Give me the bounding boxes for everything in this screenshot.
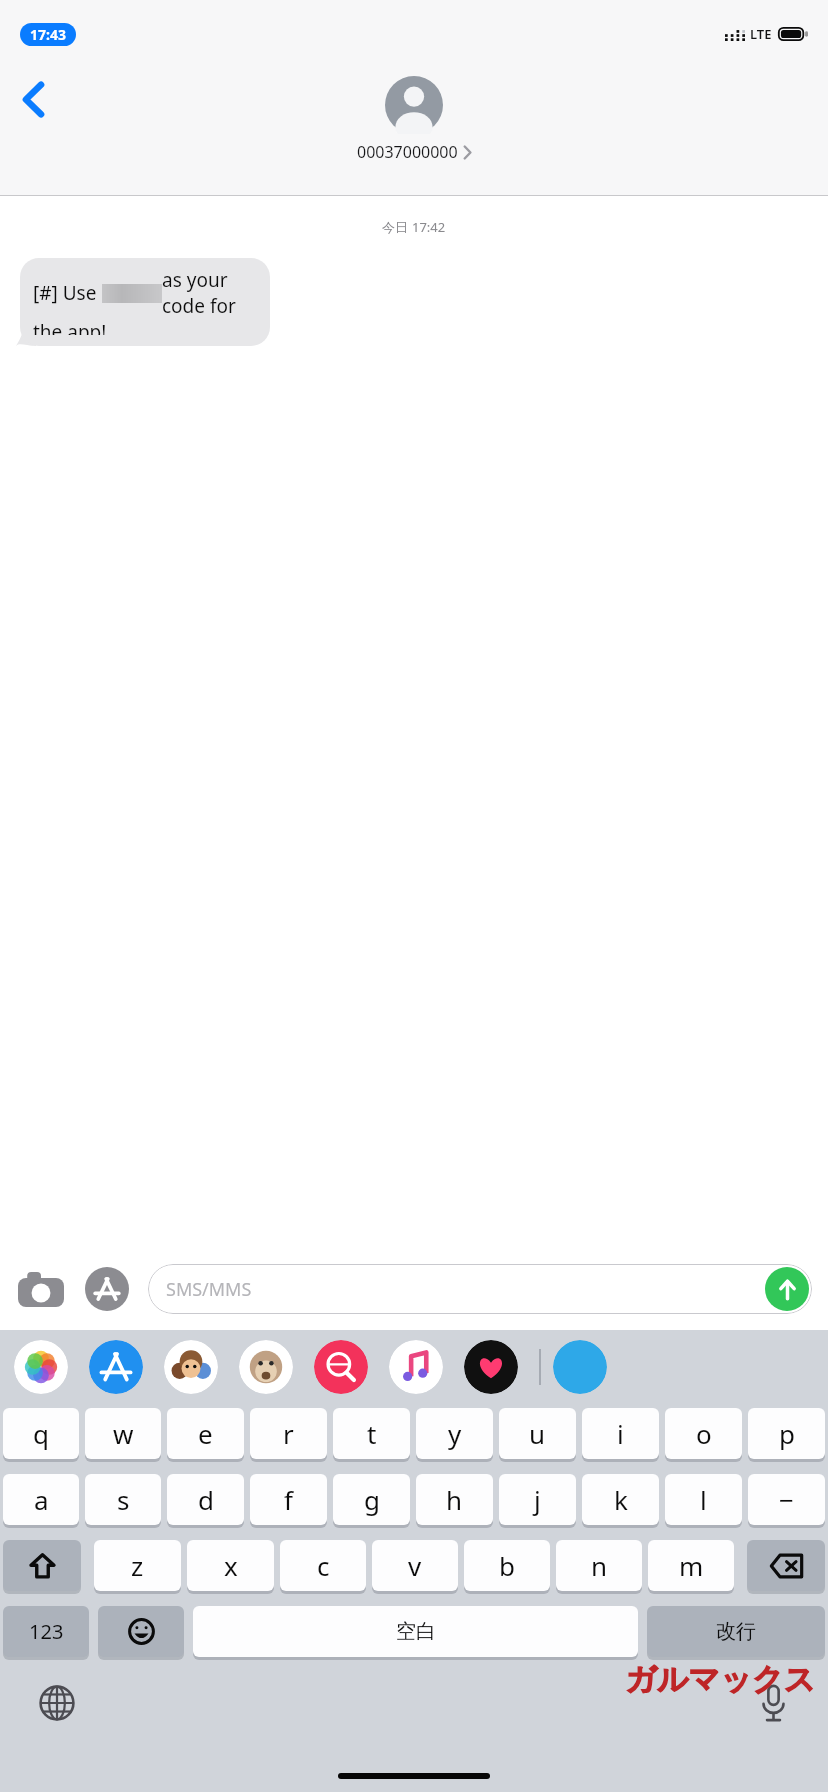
button[interactable]: x — [187, 1540, 274, 1591]
staticText: p — [779, 1416, 795, 1451]
button[interactable]: t — [333, 1408, 410, 1459]
staticText: o — [696, 1416, 712, 1451]
staticText: 17:42 — [412, 218, 446, 236]
button[interactable]: 空白 — [193, 1606, 638, 1657]
staticText: b — [499, 1548, 515, 1583]
staticText: u — [529, 1416, 546, 1451]
staticText: 00037000000 — [357, 141, 458, 163]
button[interactable]: s — [85, 1474, 161, 1525]
staticText: c — [317, 1548, 330, 1583]
button[interactable]: Camera — [16, 1264, 66, 1314]
button[interactable]: g — [333, 1474, 410, 1525]
staticText: 17:43 — [30, 25, 66, 44]
staticText: SMS/MMS — [166, 1277, 252, 1302]
button[interactable]: j — [499, 1474, 576, 1525]
button[interactable]: Back — [4, 70, 62, 128]
button[interactable]: k — [582, 1474, 659, 1525]
button[interactable]: App shortcut 0 — [14, 1340, 68, 1394]
button[interactable]: 123 — [3, 1606, 89, 1657]
button[interactable]: h — [416, 1474, 493, 1525]
staticText: s — [117, 1482, 130, 1517]
button[interactable]: Change keyboard — [30, 1676, 84, 1730]
staticText: f — [284, 1482, 293, 1517]
button[interactable]: App shortcut 1 — [89, 1340, 143, 1394]
staticText: v — [408, 1548, 422, 1583]
staticText: d — [198, 1482, 214, 1517]
button[interactable]: z — [94, 1540, 181, 1591]
staticText: g — [364, 1482, 380, 1517]
button[interactable]: p — [748, 1408, 825, 1459]
button[interactable]: 00037000000 — [357, 76, 471, 163]
button[interactable]: Delete — [747, 1540, 825, 1591]
staticText: 改行 — [716, 1619, 756, 1644]
staticText: m — [679, 1548, 704, 1583]
staticText: z — [131, 1548, 144, 1583]
staticText: r — [283, 1416, 294, 1451]
staticText: 空白 — [396, 1619, 436, 1644]
staticText: h — [446, 1482, 463, 1517]
button[interactable]: Emoji — [98, 1606, 184, 1657]
staticText: [#] Use — [33, 280, 102, 306]
staticText: l — [700, 1482, 707, 1517]
staticText: x — [224, 1548, 238, 1583]
button[interactable]: v — [372, 1540, 458, 1591]
staticText: j — [534, 1482, 541, 1517]
button[interactable]: r — [250, 1408, 327, 1459]
button[interactable]: e — [167, 1408, 244, 1459]
button[interactable]: i — [582, 1408, 659, 1459]
staticText: e — [198, 1416, 213, 1451]
button[interactable]: App shortcut 6 — [464, 1340, 518, 1394]
staticText: t — [367, 1416, 377, 1451]
button[interactable]: f — [250, 1474, 327, 1525]
button[interactable]: c — [280, 1540, 366, 1591]
button[interactable]: App shortcut 5 — [389, 1340, 443, 1394]
button[interactable]: App shortcut 4 — [314, 1340, 368, 1394]
staticText: y — [448, 1416, 462, 1451]
button[interactable]: a — [3, 1474, 79, 1525]
staticText: i — [617, 1416, 624, 1451]
staticText: as your code for — [162, 267, 260, 319]
button[interactable]: b — [464, 1540, 550, 1591]
staticText: k — [614, 1482, 628, 1517]
button[interactable]: SMS/MMS — [148, 1264, 812, 1314]
staticText: 今日 — [382, 218, 412, 236]
button[interactable]: − — [748, 1474, 825, 1525]
button[interactable]: 改行 — [647, 1606, 825, 1657]
staticText: ガルマックス — [625, 1660, 816, 1699]
button[interactable]: [#] Use — [20, 258, 270, 346]
staticText: LTE — [750, 25, 772, 43]
button[interactable]: u — [499, 1408, 576, 1459]
button[interactable]: d — [167, 1474, 244, 1525]
button[interactable]: w — [85, 1408, 161, 1459]
button[interactable]: App shortcut 3 — [239, 1340, 293, 1394]
button[interactable]: m — [648, 1540, 734, 1591]
button[interactable]: Send — [765, 1267, 809, 1311]
button[interactable]: q — [3, 1408, 79, 1459]
button[interactable]: App shortcut 7 — [553, 1340, 607, 1394]
staticText: a — [34, 1482, 49, 1517]
staticText: w — [113, 1416, 134, 1451]
staticText: 123 — [29, 1618, 64, 1645]
button[interactable]: App shortcut 2 — [164, 1340, 218, 1394]
button[interactable]: Shift — [3, 1540, 81, 1591]
staticText: n — [591, 1548, 608, 1583]
button[interactable]: y — [416, 1408, 493, 1459]
button[interactable]: App Store — [82, 1264, 132, 1314]
button[interactable]: n — [556, 1540, 642, 1591]
staticText: q — [33, 1416, 49, 1451]
staticText: the app! — [33, 319, 107, 335]
button[interactable]: l — [665, 1474, 742, 1525]
button[interactable]: o — [665, 1408, 742, 1459]
button[interactable]: Recording indicator — [20, 23, 76, 46]
button[interactable]: Dictation — [746, 1676, 800, 1730]
staticText: − — [779, 1482, 794, 1517]
